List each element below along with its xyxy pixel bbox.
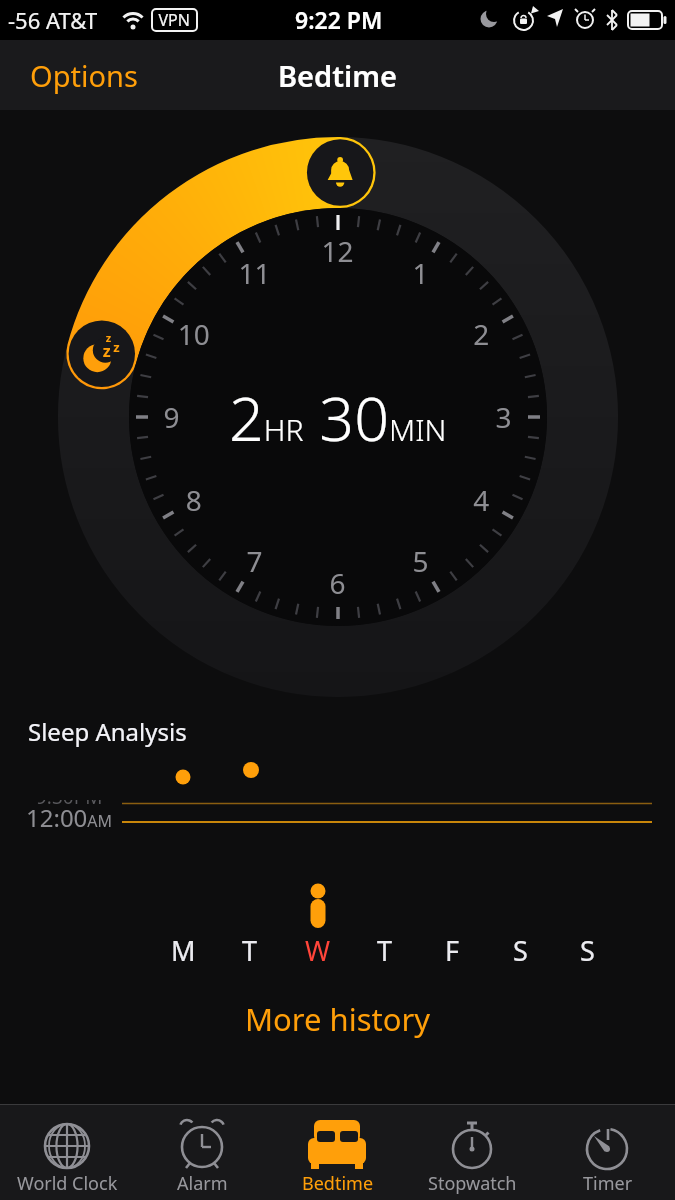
staticText: Bedtime: [278, 56, 398, 95]
staticText: Sleep Analysis: [28, 715, 187, 748]
button[interactable]: Timer: [540, 1104, 675, 1200]
staticText: M: [171, 932, 196, 966]
staticText: World Clock: [17, 1171, 118, 1196]
staticText: T: [242, 932, 258, 966]
staticText: Options: [30, 56, 138, 95]
staticText: W: [305, 932, 331, 966]
staticText: Stopwatch: [428, 1171, 517, 1196]
staticText: F: [445, 932, 460, 966]
staticText: Bedtime: [302, 1171, 374, 1196]
staticText: Timer: [583, 1171, 633, 1196]
button[interactable]: More history: [238, 995, 438, 1043]
staticText: T: [377, 932, 393, 966]
staticText: More history: [245, 998, 431, 1040]
staticText: S: [513, 932, 528, 966]
button[interactable]: World Clock: [0, 1104, 135, 1200]
button[interactable]: Options: [30, 56, 138, 95]
button[interactable]: Alarm: [135, 1104, 270, 1200]
button[interactable]: Bedtime: [270, 1104, 405, 1200]
button[interactable]: Stopwatch: [405, 1104, 540, 1200]
staticText: Alarm: [177, 1171, 228, 1196]
staticText: S: [580, 932, 595, 966]
